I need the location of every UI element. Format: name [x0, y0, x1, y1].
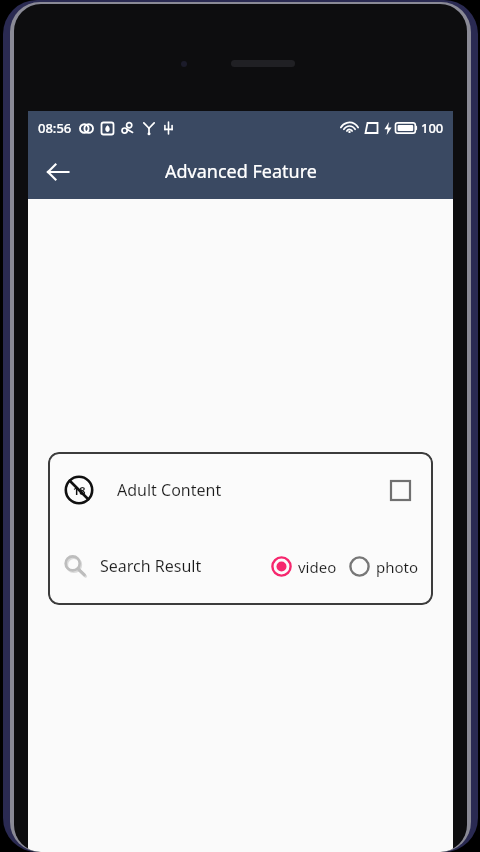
button[interactable]: photo: [349, 556, 419, 577]
staticText: video: [298, 557, 337, 577]
staticText: 18: [73, 483, 86, 498]
button[interactable]: 18: [48, 452, 433, 528]
staticText: Search Result: [100, 555, 202, 577]
staticText: 08:56: [38, 119, 72, 137]
button[interactable]: Back: [34, 148, 82, 196]
staticText: photo: [376, 557, 419, 577]
staticText: 100: [421, 119, 444, 137]
button[interactable]: Adult content checkbox: [385, 475, 415, 505]
button[interactable]: video: [271, 556, 337, 577]
staticText: Adult Content: [117, 479, 222, 501]
staticText: Advanced Feature: [165, 159, 317, 184]
